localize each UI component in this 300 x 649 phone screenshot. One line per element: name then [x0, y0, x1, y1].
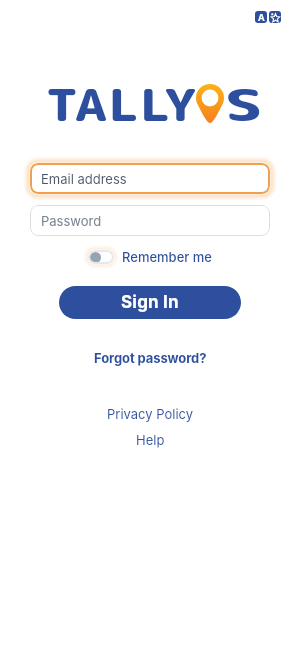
button[interactable]: Forgot password? — [94, 350, 207, 366]
staticText: Privacy Policy — [107, 406, 194, 422]
button[interactable]: Privacy Policy — [107, 406, 194, 422]
staticText: Email address — [41, 171, 127, 187]
staticText: TALLY — [46, 74, 198, 135]
button[interactable]: Sign In — [59, 286, 241, 319]
staticText: S — [225, 74, 263, 135]
button[interactable]: Remember me — [88, 249, 212, 265]
button[interactable]: Email address — [30, 163, 270, 194]
staticText: Help — [136, 432, 165, 448]
staticText: A — [258, 12, 265, 23]
staticText: Sign In — [121, 292, 179, 313]
staticText: Remember me — [122, 249, 212, 265]
staticText: Password — [41, 213, 102, 229]
button[interactable]: Help — [136, 432, 165, 448]
staticText: Forgot password? — [94, 350, 207, 366]
button[interactable]: A — [255, 11, 281, 23]
button[interactable]: Password — [30, 205, 270, 236]
